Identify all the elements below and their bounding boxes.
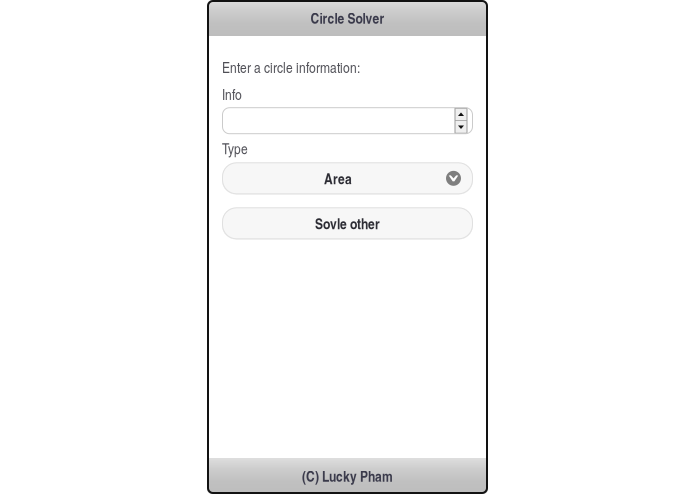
staticText: Circle Solver [310, 8, 384, 28]
button[interactable]: Area [222, 162, 473, 194]
button[interactable]: Sovle other [222, 207, 473, 239]
button[interactable]: Increase value [455, 108, 467, 120]
staticText: Sovle other [315, 213, 380, 234]
staticText: (C) Lucky Pham [302, 466, 393, 486]
button[interactable]: Decrease value [455, 121, 467, 133]
staticText: Enter a circle information: [222, 57, 360, 77]
staticText: Type [222, 138, 248, 158]
staticText: Area [324, 168, 352, 189]
staticText: Info [222, 84, 242, 104]
